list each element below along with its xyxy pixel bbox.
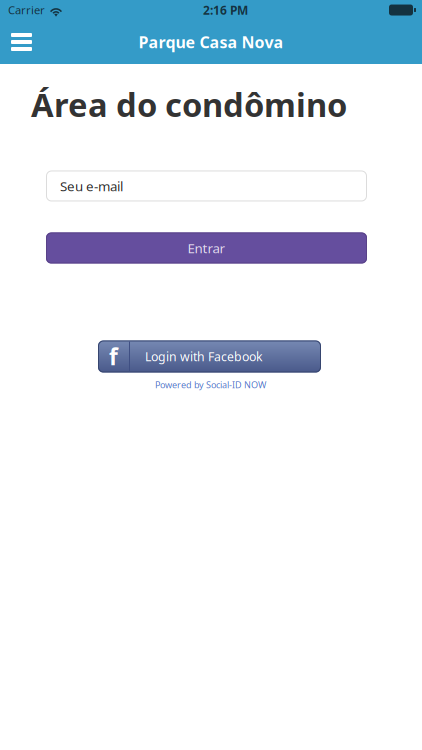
staticText: Carrier bbox=[8, 2, 45, 18]
button[interactable]: Entrar bbox=[46, 232, 367, 263]
staticText: f bbox=[109, 341, 118, 372]
staticText: Login with Facebook bbox=[145, 348, 263, 365]
button[interactable]: Powered by Social-ID NOW bbox=[155, 378, 266, 391]
staticText: Seu e-mail bbox=[60, 177, 123, 195]
staticText: Área do condômino bbox=[31, 82, 347, 126]
staticText: Entrar bbox=[187, 239, 225, 257]
staticText: Powered by Social-ID NOW bbox=[155, 378, 266, 391]
staticText: 2:16 PM bbox=[203, 2, 248, 18]
staticText: Parque Casa Nova bbox=[138, 31, 283, 53]
button[interactable]: Menu bbox=[0, 20, 43, 64]
button[interactable]: f bbox=[98, 340, 321, 372]
